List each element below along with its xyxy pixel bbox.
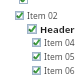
button[interactable]: Checkbox Item 01 <box>19 0 28 4</box>
staticText: Item 04 <box>44 37 75 47</box>
button[interactable]: Checkbox Item 02 <box>0 10 80 20</box>
staticText: Item 02 <box>27 10 58 20</box>
staticText: Header 2 <box>40 23 80 34</box>
staticText: Item 06 <box>44 65 75 75</box>
button[interactable]: Checkbox Item 04 <box>32 38 41 47</box>
button[interactable]: Checkbox Header 2 <box>0 23 80 34</box>
button[interactable]: Checkbox Item 06 <box>32 66 41 75</box>
button[interactable]: Checkbox Item 02 <box>15 11 24 20</box>
button[interactable]: Checkbox Item 04 <box>0 37 80 47</box>
staticText: Item 05 <box>44 51 75 61</box>
button[interactable]: Checkbox Item 05 <box>0 51 80 61</box>
button[interactable]: Checkbox Item 05 <box>32 52 41 61</box>
button[interactable]: Checkbox Item 06 <box>0 65 80 75</box>
button[interactable]: Checkbox Header 2 <box>27 24 37 34</box>
